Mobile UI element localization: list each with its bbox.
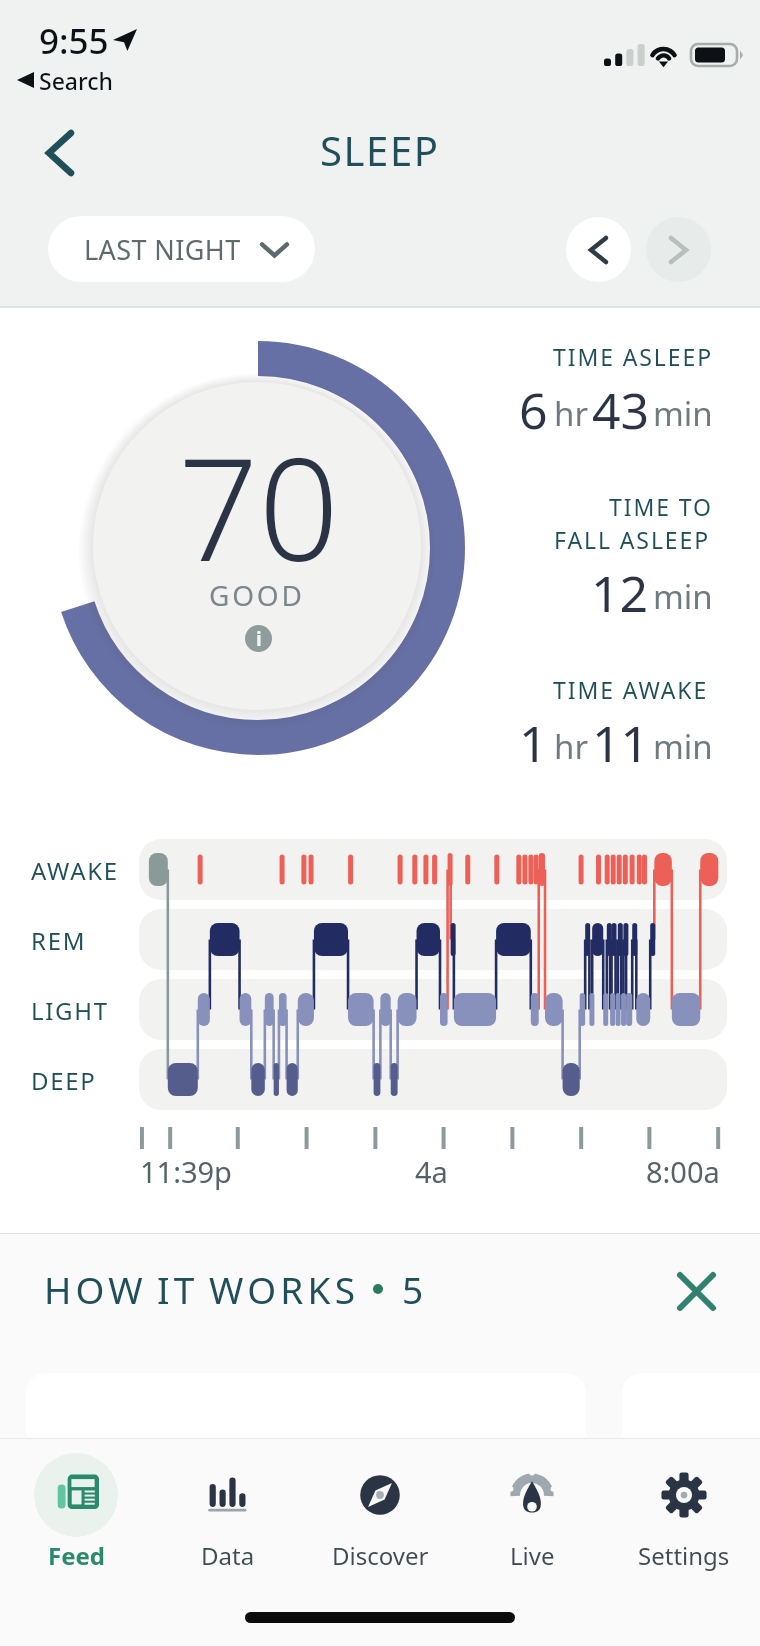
button[interactable]: Discover [304, 1439, 456, 1586]
staticText: 1 [519, 709, 548, 777]
button[interactable]: Score info [245, 625, 272, 652]
button[interactable]: Next night [646, 217, 711, 282]
staticText: TIME ASLEEP [553, 341, 713, 372]
staticText: FALL ASLEEP [554, 524, 711, 555]
staticText: 70 [178, 410, 340, 602]
staticText: min [653, 724, 713, 769]
staticText: REM [31, 924, 87, 957]
staticText: 11 [592, 709, 650, 777]
button[interactable] [26, 1373, 586, 1453]
staticText: LIGHT [31, 994, 109, 1027]
staticText: TIME AWAKE [553, 674, 709, 705]
staticText: IT [157, 1264, 199, 1314]
staticText: 43 [592, 376, 650, 444]
staticText: Settings [638, 1539, 730, 1572]
button[interactable]: Live [456, 1439, 608, 1586]
button[interactable]: Settings [608, 1439, 760, 1586]
button[interactable]: Close [664, 1259, 728, 1323]
button[interactable]: Data [152, 1439, 304, 1586]
staticText: WORKS [209, 1264, 360, 1314]
button[interactable]: Previous night [566, 217, 631, 282]
staticText: SLEEP [320, 123, 440, 177]
staticText: i [256, 626, 262, 652]
staticText: TIME TO [609, 491, 713, 522]
button[interactable]: Back [24, 117, 96, 189]
staticText: hr [554, 391, 589, 436]
staticText: 5 [402, 1264, 428, 1314]
staticText: Discover [332, 1539, 429, 1572]
staticText: Data [201, 1539, 255, 1572]
button[interactable]: Feed [0, 1439, 152, 1586]
staticText: 8:00a [646, 1152, 720, 1191]
button[interactable] [622, 1373, 760, 1453]
button[interactable]: LAST NIGHT [48, 216, 315, 282]
staticText: 4a [415, 1152, 448, 1191]
staticText: 11:39p [140, 1152, 232, 1191]
button[interactable]: HOW [44, 1264, 428, 1314]
staticText: Live [510, 1539, 555, 1572]
staticText: HOW [44, 1264, 147, 1314]
staticText: 9:55 [39, 17, 109, 65]
staticText: 6 [519, 376, 548, 444]
staticText: GOOD [209, 576, 305, 614]
staticText: Search [39, 65, 113, 96]
staticText: min [653, 574, 713, 619]
staticText: min [653, 391, 713, 436]
staticText: hr [554, 724, 589, 769]
staticText: LAST NIGHT [84, 231, 241, 268]
staticText: 12 [591, 559, 649, 627]
staticText: DEEP [31, 1064, 97, 1097]
staticText: Feed [48, 1539, 105, 1572]
staticText: AWAKE [31, 854, 119, 887]
